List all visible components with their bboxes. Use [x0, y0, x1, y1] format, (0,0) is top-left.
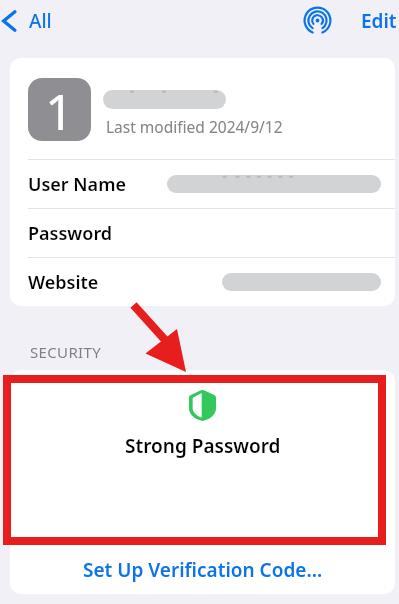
- staticText: Website: [28, 270, 99, 295]
- staticText: Set Up Verification Code...: [83, 557, 323, 583]
- button[interactable]: Password: [10, 209, 395, 257]
- staticText: Password: [28, 221, 113, 246]
- staticText: All: [29, 8, 52, 34]
- button[interactable]: AirDrop: [301, 5, 334, 38]
- button[interactable]: All: [0, 0, 62, 42]
- staticText: Last modified 2024/9/12: [106, 116, 283, 137]
- button[interactable]: Set Up Verification Code...: [10, 545, 395, 594]
- button[interactable]: User Name: [10, 160, 395, 208]
- staticText: Strong Password: [125, 433, 281, 459]
- button[interactable]: Edit: [352, 0, 399, 42]
- button[interactable]: Strong Password: [10, 370, 395, 545]
- staticText: User Name: [28, 172, 126, 197]
- button[interactable]: Website: [10, 258, 395, 306]
- staticText: Edit: [361, 8, 397, 34]
- staticText: SECURITY: [30, 342, 102, 362]
- staticText: 1: [45, 78, 74, 140]
